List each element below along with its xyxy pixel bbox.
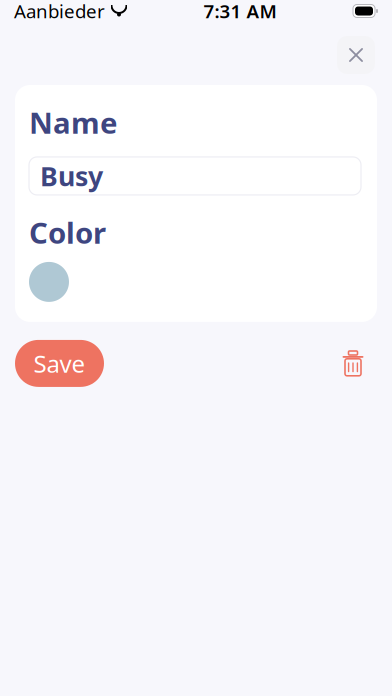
staticText: Color	[29, 213, 106, 252]
button[interactable]: Close	[337, 36, 375, 74]
staticText: Name	[29, 103, 118, 142]
staticText: 7:31 AM	[203, 0, 276, 23]
button[interactable]: Delete	[333, 343, 373, 383]
button[interactable]: Save	[15, 340, 104, 387]
button[interactable]: Choose color	[29, 262, 69, 302]
staticText: Save	[33, 347, 85, 379]
staticText: Busy	[40, 158, 103, 194]
staticText: Aanbieder	[14, 0, 105, 23]
